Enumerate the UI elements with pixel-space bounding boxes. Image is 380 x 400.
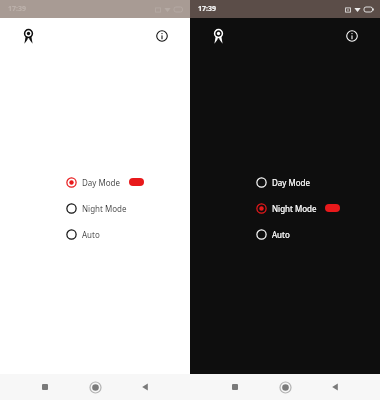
staticText: Day Mode bbox=[82, 177, 121, 188]
button[interactable]: Info bbox=[152, 26, 172, 46]
staticText: Auto bbox=[272, 229, 290, 240]
button[interactable]: Auto bbox=[66, 226, 190, 242]
button[interactable]: Active indicator bbox=[129, 178, 144, 186]
button[interactable]: Back bbox=[324, 376, 346, 398]
button[interactable]: Recents bbox=[34, 376, 56, 398]
staticText: Auto bbox=[82, 229, 100, 240]
button[interactable]: Back bbox=[134, 376, 156, 398]
button[interactable]: Night Mode bbox=[256, 200, 380, 216]
button[interactable]: App logo bbox=[18, 26, 38, 46]
staticText: 17:39 bbox=[8, 4, 26, 14]
button[interactable]: Recents bbox=[224, 376, 246, 398]
button[interactable]: App logo bbox=[208, 26, 228, 46]
button[interactable]: Home bbox=[84, 376, 106, 398]
staticText: Night Mode bbox=[82, 203, 127, 214]
button[interactable]: Night Mode bbox=[66, 200, 190, 216]
button[interactable]: Info bbox=[342, 26, 362, 46]
button[interactable]: Day Mode bbox=[66, 174, 190, 190]
staticText: Day Mode bbox=[272, 177, 311, 188]
button[interactable]: Day Mode bbox=[256, 174, 380, 190]
staticText: Night Mode bbox=[272, 203, 317, 214]
button[interactable]: Auto bbox=[256, 226, 380, 242]
button[interactable]: Home bbox=[274, 376, 296, 398]
staticText: 17:39 bbox=[198, 4, 216, 14]
button[interactable]: Active indicator bbox=[325, 204, 340, 212]
